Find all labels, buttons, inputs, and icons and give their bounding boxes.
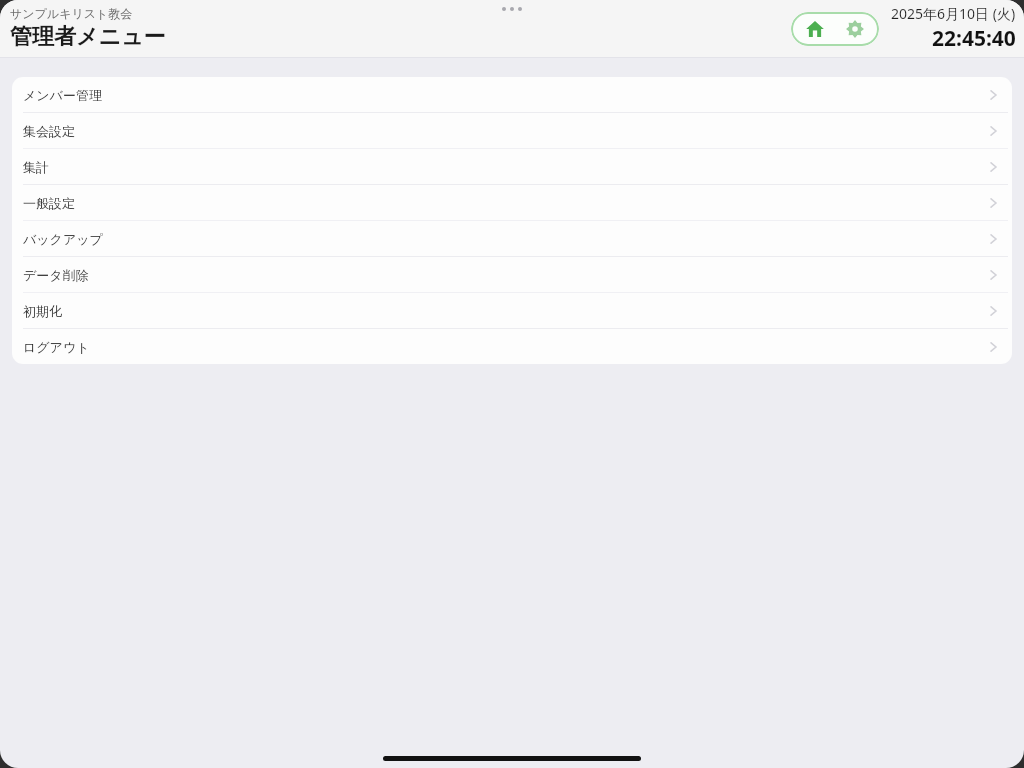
button[interactable]: バックアップ — [12, 221, 1012, 256]
staticText: サンプルキリスト教会 — [10, 6, 133, 21]
staticText: 一般設定 — [23, 195, 75, 211]
staticText: データ削除 — [23, 267, 89, 283]
staticText: 22:45:40 — [932, 24, 1016, 53]
staticText: ログアウト — [23, 339, 90, 355]
button[interactable]: 一般設定 — [12, 185, 1012, 220]
staticText: 初期化 — [23, 303, 62, 319]
button[interactable]: データ削除 — [12, 257, 1012, 292]
button[interactable]: ログアウト — [12, 329, 1012, 364]
staticText: 集計 — [23, 159, 49, 175]
button[interactable]: 集計 — [12, 149, 1012, 184]
button[interactable]: メンバー管理 — [12, 77, 1012, 112]
staticText: 2025年6月10日 (火) — [891, 4, 1016, 23]
staticText: メンバー管理 — [23, 87, 102, 103]
staticText: バックアップ — [23, 231, 103, 247]
staticText: 集会設定 — [23, 123, 75, 139]
button[interactable]: Home — [798, 12, 832, 46]
button[interactable]: Settings — [838, 12, 872, 46]
staticText: 管理者メニュー — [10, 23, 166, 51]
button[interactable]: 集会設定 — [12, 113, 1012, 148]
button[interactable]: 初期化 — [12, 293, 1012, 328]
